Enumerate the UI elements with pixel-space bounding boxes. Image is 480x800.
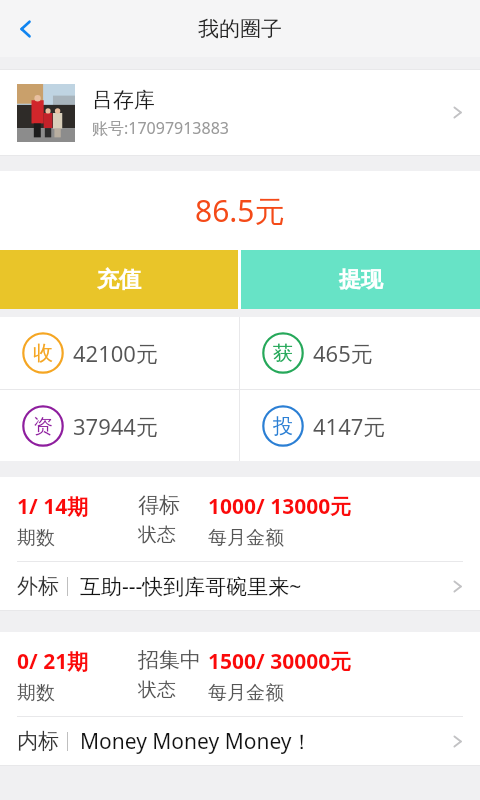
staticText: 1000/ 13000元 — [208, 492, 352, 521]
staticText: 1500/ 30000元 — [208, 647, 352, 676]
button[interactable]: 收 — [0, 317, 239, 389]
staticText: 42100元 — [73, 338, 158, 368]
staticText: 资 — [33, 414, 53, 439]
button[interactable]: 0/ 21期 — [0, 632, 480, 766]
staticText: 期数 — [17, 526, 55, 550]
staticText: 账号:17097913883 — [92, 117, 229, 139]
staticText: 465元 — [313, 338, 373, 368]
staticText: 0/ 21期 — [17, 647, 89, 676]
button[interactable]: 资 — [0, 390, 239, 461]
staticText: 4147元 — [313, 411, 386, 441]
button[interactable]: 提现 — [241, 250, 480, 309]
staticText: 每月金额 — [208, 526, 284, 550]
staticText: 招集中 — [138, 647, 201, 673]
staticText: 内标 — [17, 728, 59, 754]
button[interactable]: 1/ 14期 — [0, 477, 480, 611]
staticText: 充值 — [97, 266, 141, 294]
button[interactable]: 吕存库 — [0, 69, 480, 156]
button[interactable]: Back — [0, 0, 52, 57]
staticText: 吕存库 — [92, 87, 155, 113]
staticText: 1/ 14期 — [17, 492, 89, 521]
staticText: 我的圈子 — [198, 16, 282, 42]
staticText: 86.5元 — [195, 190, 285, 231]
staticText: 投 — [273, 414, 293, 439]
staticText: 获 — [273, 341, 293, 366]
button[interactable]: 获 — [240, 317, 480, 389]
button[interactable]: 投 — [240, 390, 480, 461]
staticText: 状态 — [138, 678, 176, 702]
staticText: 收 — [33, 341, 53, 366]
staticText: 得标 — [138, 492, 180, 518]
staticText: 互助---快到库哥碗里来~ — [80, 572, 449, 601]
staticText: 37944元 — [73, 411, 158, 441]
staticText: 外标 — [17, 573, 59, 599]
button[interactable]: 充值 — [0, 250, 238, 309]
staticText: 状态 — [138, 523, 176, 547]
staticText: 提现 — [339, 266, 383, 294]
staticText: 每月金额 — [208, 681, 284, 705]
staticText: 期数 — [17, 681, 55, 705]
staticText: Money Money Money！ — [80, 727, 449, 756]
